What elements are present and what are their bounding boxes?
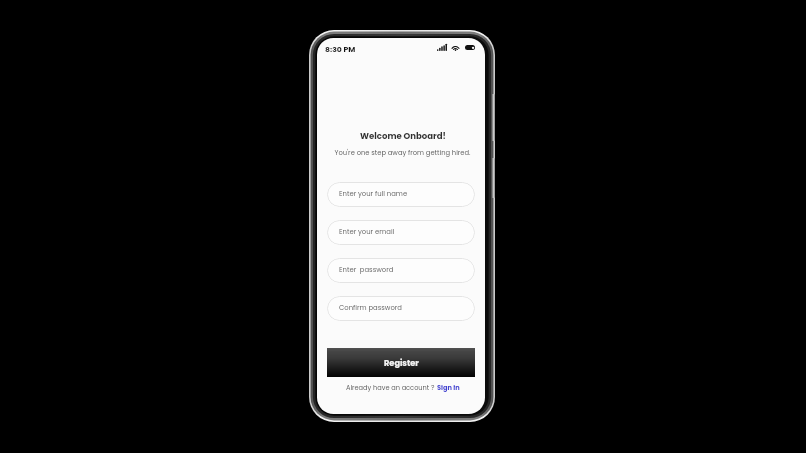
staticText: Welcome Onboard! xyxy=(360,130,446,142)
other: Wi-Fi xyxy=(451,44,460,51)
staticText: Enter password xyxy=(339,265,394,275)
button[interactable]: Confirm password xyxy=(327,296,475,321)
other: Cellular signal xyxy=(437,44,447,51)
staticText: Already have an account ? xyxy=(346,383,437,392)
button[interactable]: Enter password xyxy=(327,258,475,283)
button[interactable]: Enter your full name xyxy=(327,182,475,207)
button[interactable]: Already have an account ? xyxy=(346,383,460,392)
other: Battery xyxy=(465,45,475,50)
staticText: Register xyxy=(384,357,419,368)
staticText: You're one step away from getting hired. xyxy=(334,148,471,157)
staticText: Sign in xyxy=(437,383,460,392)
staticText: Enter your full name xyxy=(339,189,408,199)
staticText: 8:30 PM xyxy=(325,44,356,55)
button[interactable]: Enter your email xyxy=(327,220,475,245)
button[interactable]: Register xyxy=(327,348,475,377)
staticText: Confirm password xyxy=(339,303,402,313)
staticText: Enter your email xyxy=(339,227,395,237)
